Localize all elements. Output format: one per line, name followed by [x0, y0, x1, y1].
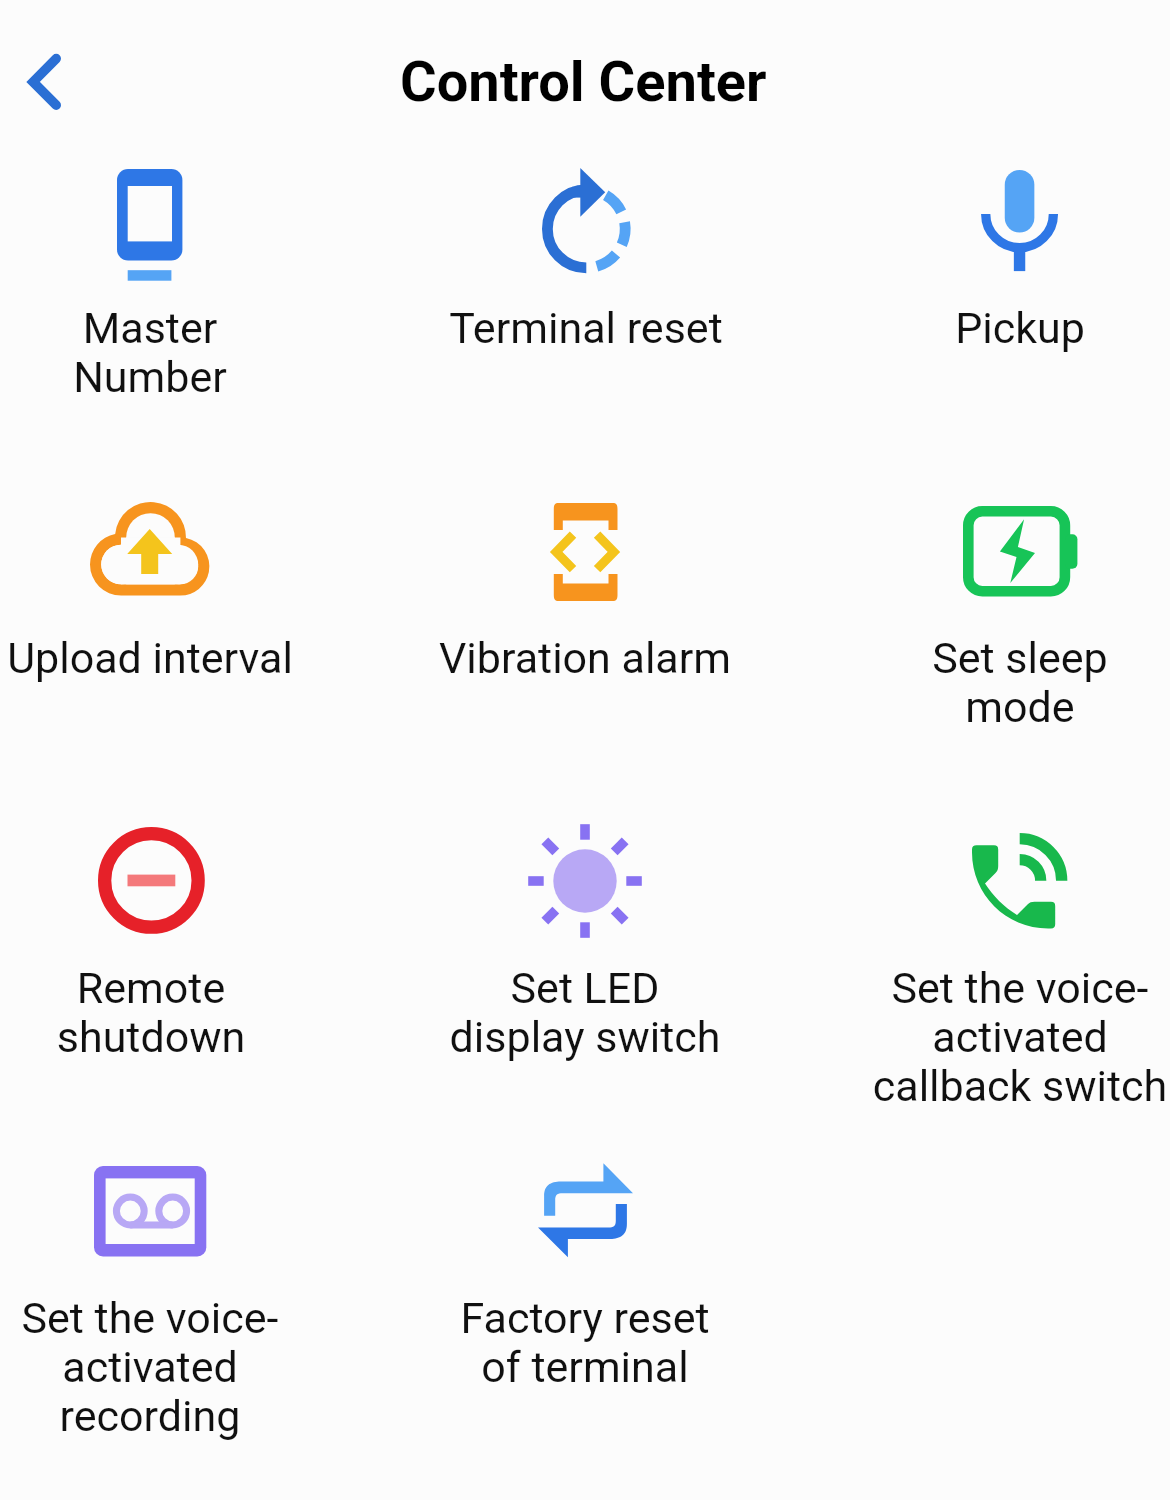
staticText: Vibration alarm: [435, 633, 735, 683]
button[interactable]: Vibration alarm: [435, 480, 735, 793]
staticText: Set LED display switch: [435, 963, 735, 1063]
button[interactable]: Master Number: [0, 150, 300, 463]
staticText: Set the voice- activated callback switch: [870, 963, 1170, 1112]
staticText: Master Number: [0, 303, 300, 403]
button[interactable]: Back: [0, 30, 100, 134]
staticText: Set the voice- activated recording: [0, 1293, 300, 1442]
button[interactable]: Terminal reset: [436, 150, 736, 463]
button[interactable]: Set the voice- activated callback switch: [870, 810, 1170, 1123]
staticText: Upload interval: [0, 633, 300, 683]
staticText: Pickup: [870, 303, 1170, 353]
button[interactable]: Set the voice- activated recording: [0, 1140, 300, 1453]
button[interactable]: Upload interval: [0, 480, 300, 793]
button[interactable]: Set LED display switch: [435, 810, 735, 1123]
staticText: Remote shutdown: [1, 963, 301, 1063]
button[interactable]: Pickup: [870, 150, 1170, 463]
staticText: Control Center: [400, 49, 767, 115]
button[interactable]: Factory reset of terminal: [435, 1140, 735, 1453]
button[interactable]: Set sleep mode: [870, 480, 1170, 793]
staticText: Terminal reset: [436, 303, 736, 353]
staticText: Factory reset of terminal: [435, 1293, 735, 1393]
button[interactable]: Remote shutdown: [1, 810, 301, 1123]
staticText: Set sleep mode: [870, 633, 1170, 733]
